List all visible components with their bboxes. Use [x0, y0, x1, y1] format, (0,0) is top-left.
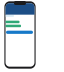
button[interactable]: [6, 31, 33, 34]
button[interactable]: [5, 25, 21, 27]
button[interactable]: [5, 21, 19, 23]
